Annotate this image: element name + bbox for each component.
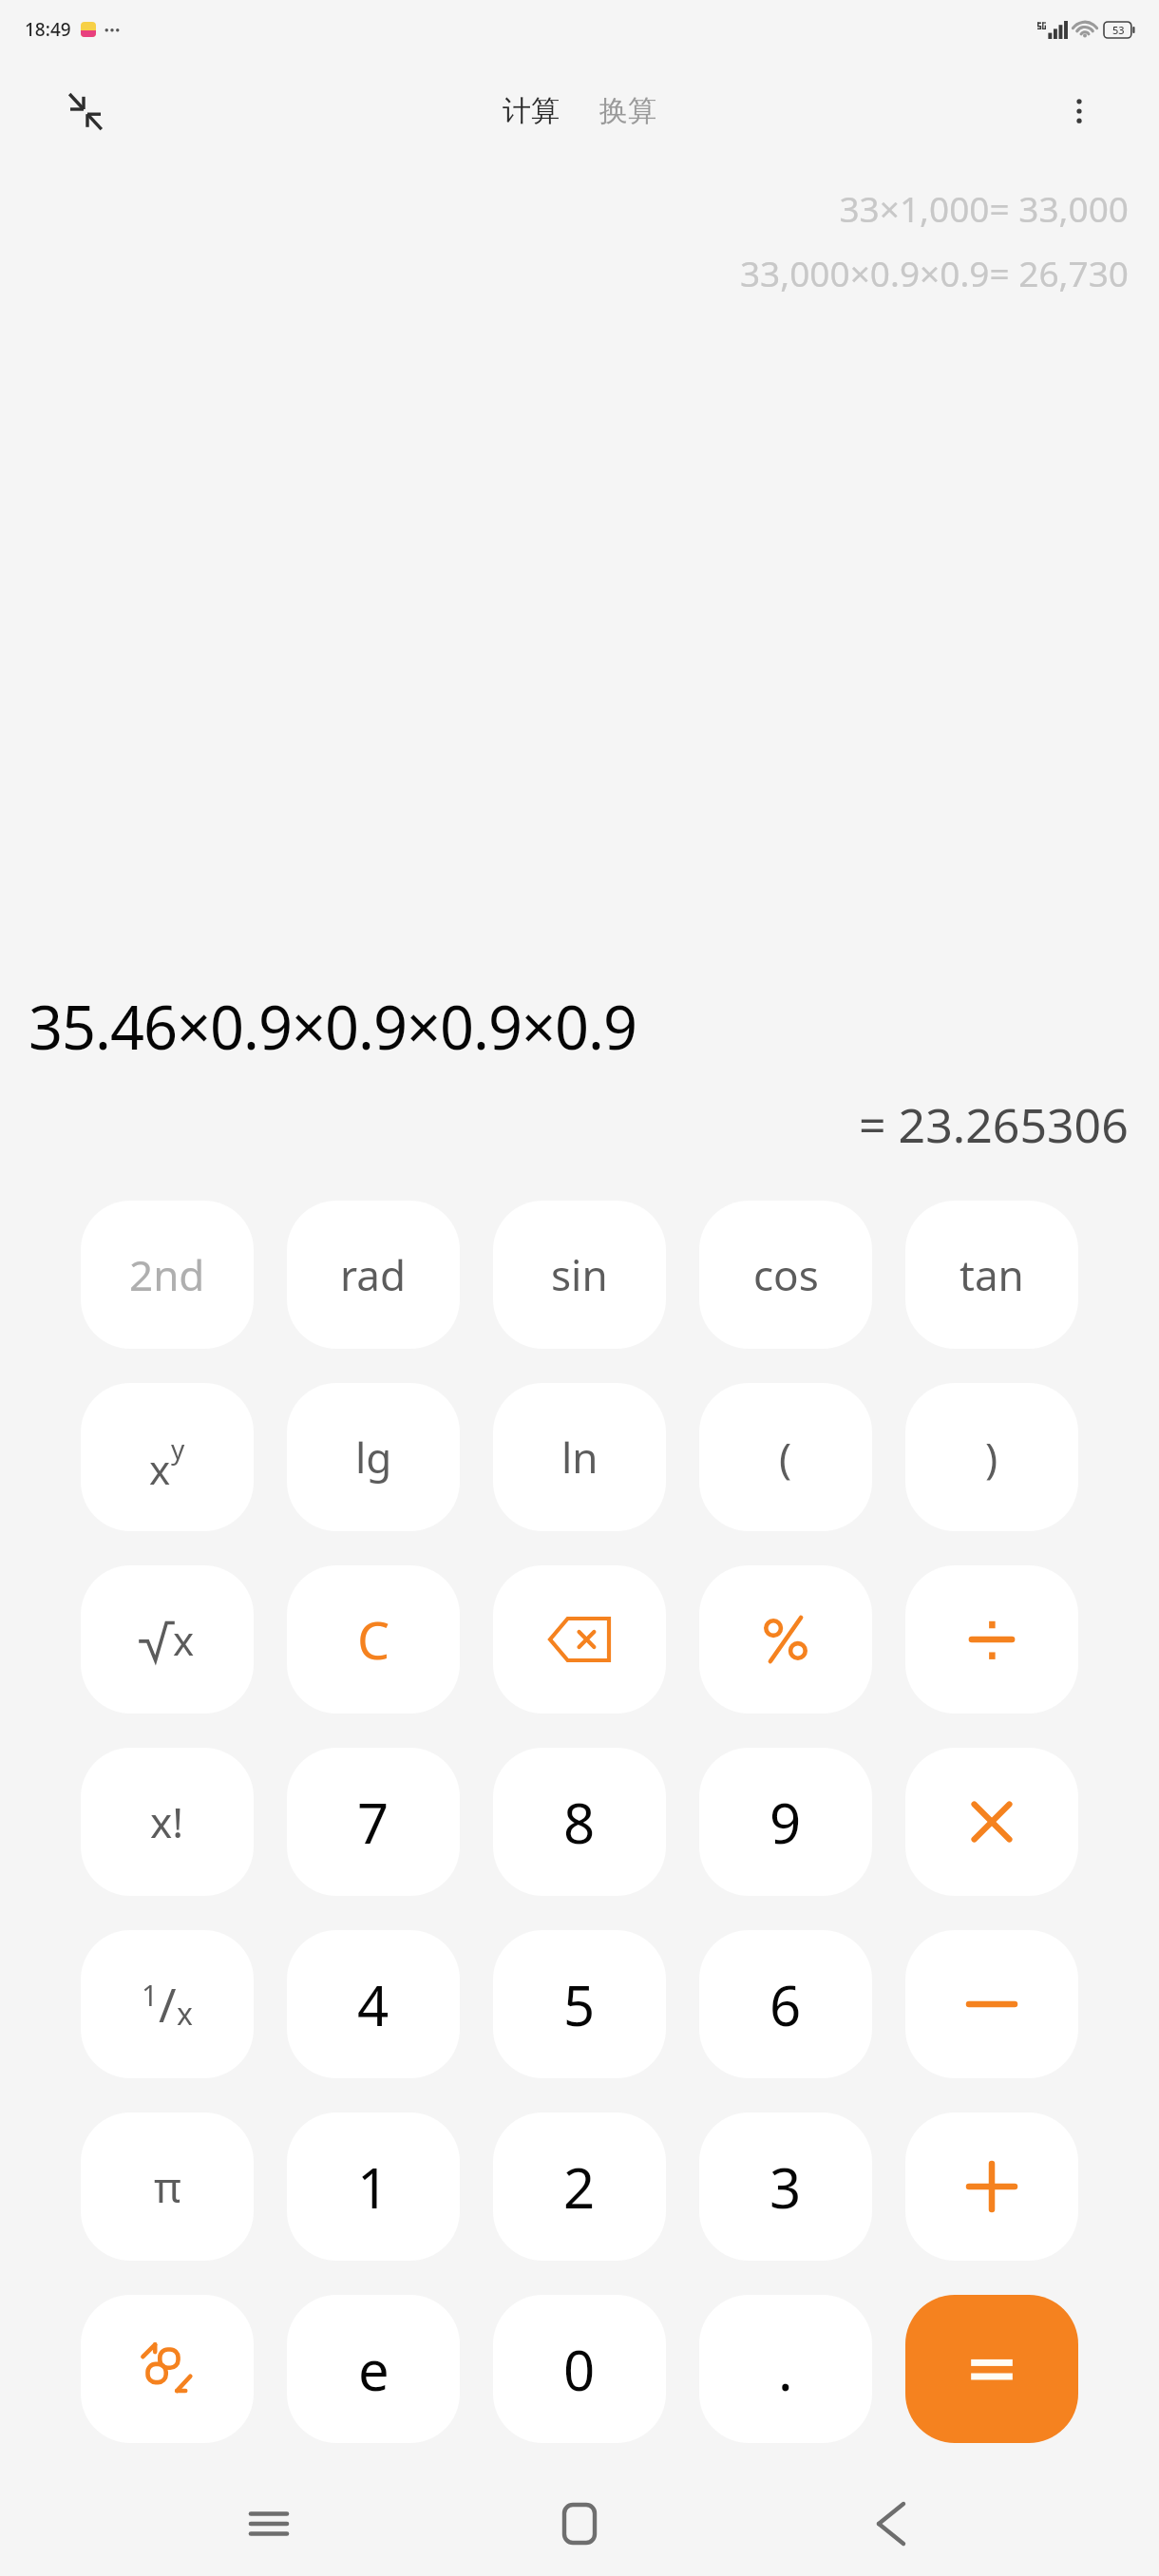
staticText: 35.46×0.9×0.9×0.9×0.9 — [28, 986, 636, 1068]
button[interactable]: 4 — [287, 1930, 460, 2078]
button[interactable]: 1 — [287, 2112, 460, 2261]
staticText: π — [154, 2158, 181, 2215]
button[interactable]: One over x — [81, 1930, 254, 2078]
button[interactable]: Delete — [493, 1565, 666, 1714]
staticText: 7 — [357, 1785, 389, 1860]
staticText: ( — [779, 1429, 792, 1486]
button[interactable]: cos — [699, 1201, 872, 1349]
button[interactable]: tan — [905, 1201, 1078, 1349]
button[interactable]: lg — [287, 1383, 460, 1531]
button[interactable]: e — [287, 2295, 460, 2443]
button[interactable]: x! — [81, 1748, 254, 1896]
staticText: e — [358, 2332, 389, 2407]
staticText: sin — [551, 1246, 608, 1303]
button[interactable]: C — [287, 1565, 460, 1714]
staticText: 8 — [563, 1785, 596, 1860]
staticText: 换算 — [599, 93, 656, 129]
button[interactable]: ( — [699, 1383, 872, 1531]
staticText: = 23.265306 — [859, 1092, 1129, 1157]
staticText: 2nd — [129, 1246, 205, 1303]
button[interactable]: 换算 — [590, 87, 666, 135]
staticText: 0 — [563, 2332, 596, 2407]
staticText: 6 — [769, 1967, 802, 2042]
button[interactable]: 9 — [699, 1748, 872, 1896]
button[interactable]: Percent — [699, 1565, 872, 1714]
staticText: x — [149, 1442, 171, 1496]
button[interactable]: 8 — [493, 1748, 666, 1896]
button[interactable]: Equals — [905, 2295, 1078, 2443]
button[interactable]: Minus — [905, 1930, 1078, 2078]
button[interactable]: 2 — [493, 2112, 666, 2261]
staticText: 9 — [769, 1785, 802, 1860]
button[interactable]: Divide — [905, 1565, 1078, 1714]
staticText: 5 — [563, 1967, 596, 2042]
button[interactable]: 3 — [699, 2112, 872, 2261]
staticText: x — [173, 1613, 195, 1667]
staticText: 1 — [142, 1976, 159, 2015]
button[interactable]: Recents — [226, 2481, 312, 2567]
staticText: y — [171, 1430, 185, 1467]
button[interactable]: 6 — [699, 1930, 872, 2078]
staticText: ln — [561, 1429, 598, 1486]
button[interactable]: ln — [493, 1383, 666, 1531]
staticText: 2 — [563, 2150, 596, 2225]
button[interactable]: Unit converter — [81, 2295, 254, 2443]
staticText: 4 — [357, 1967, 389, 2042]
staticText: tan — [959, 1246, 1024, 1303]
button[interactable]: Multiply — [905, 1748, 1078, 1896]
button[interactable]: rad — [287, 1201, 460, 1349]
button[interactable]: Square root — [81, 1565, 254, 1714]
staticText: cos — [753, 1246, 819, 1303]
staticText: rad — [340, 1246, 407, 1303]
button[interactable]: . — [699, 2295, 872, 2443]
staticText: x! — [150, 1793, 184, 1850]
staticText: 33,000×0.9×0.9= 26,730 — [739, 249, 1129, 296]
staticText: C — [357, 1604, 390, 1675]
button[interactable]: 2nd — [81, 1201, 254, 1349]
staticText: 1 — [357, 2150, 389, 2225]
staticText: lg — [355, 1429, 392, 1486]
staticText: 33×1,000= 33,000 — [839, 184, 1129, 232]
button[interactable]: More options — [1053, 85, 1106, 138]
button[interactable]: x to the power y — [81, 1383, 254, 1531]
staticText: / — [159, 1972, 177, 2036]
staticText: . — [778, 2332, 793, 2407]
button[interactable]: 5 — [493, 1930, 666, 2078]
button[interactable]: 7 — [287, 1748, 460, 1896]
staticText: 3 — [769, 2150, 802, 2225]
staticText: ) — [985, 1429, 998, 1486]
button[interactable]: 0 — [493, 2295, 666, 2443]
button[interactable]: Home — [537, 2481, 622, 2567]
button[interactable]: Back — [848, 2481, 934, 2567]
button[interactable]: sin — [493, 1201, 666, 1349]
button[interactable]: ) — [905, 1383, 1078, 1531]
staticText: x — [177, 1993, 193, 2035]
staticText: 18:49 — [25, 17, 71, 42]
button[interactable]: 计算 — [493, 87, 569, 135]
button[interactable]: Collapse — [59, 85, 112, 138]
staticText: 计算 — [503, 93, 560, 129]
button[interactable]: π — [81, 2112, 254, 2261]
staticText: 53 — [1112, 23, 1125, 37]
button[interactable]: Plus — [905, 2112, 1078, 2261]
